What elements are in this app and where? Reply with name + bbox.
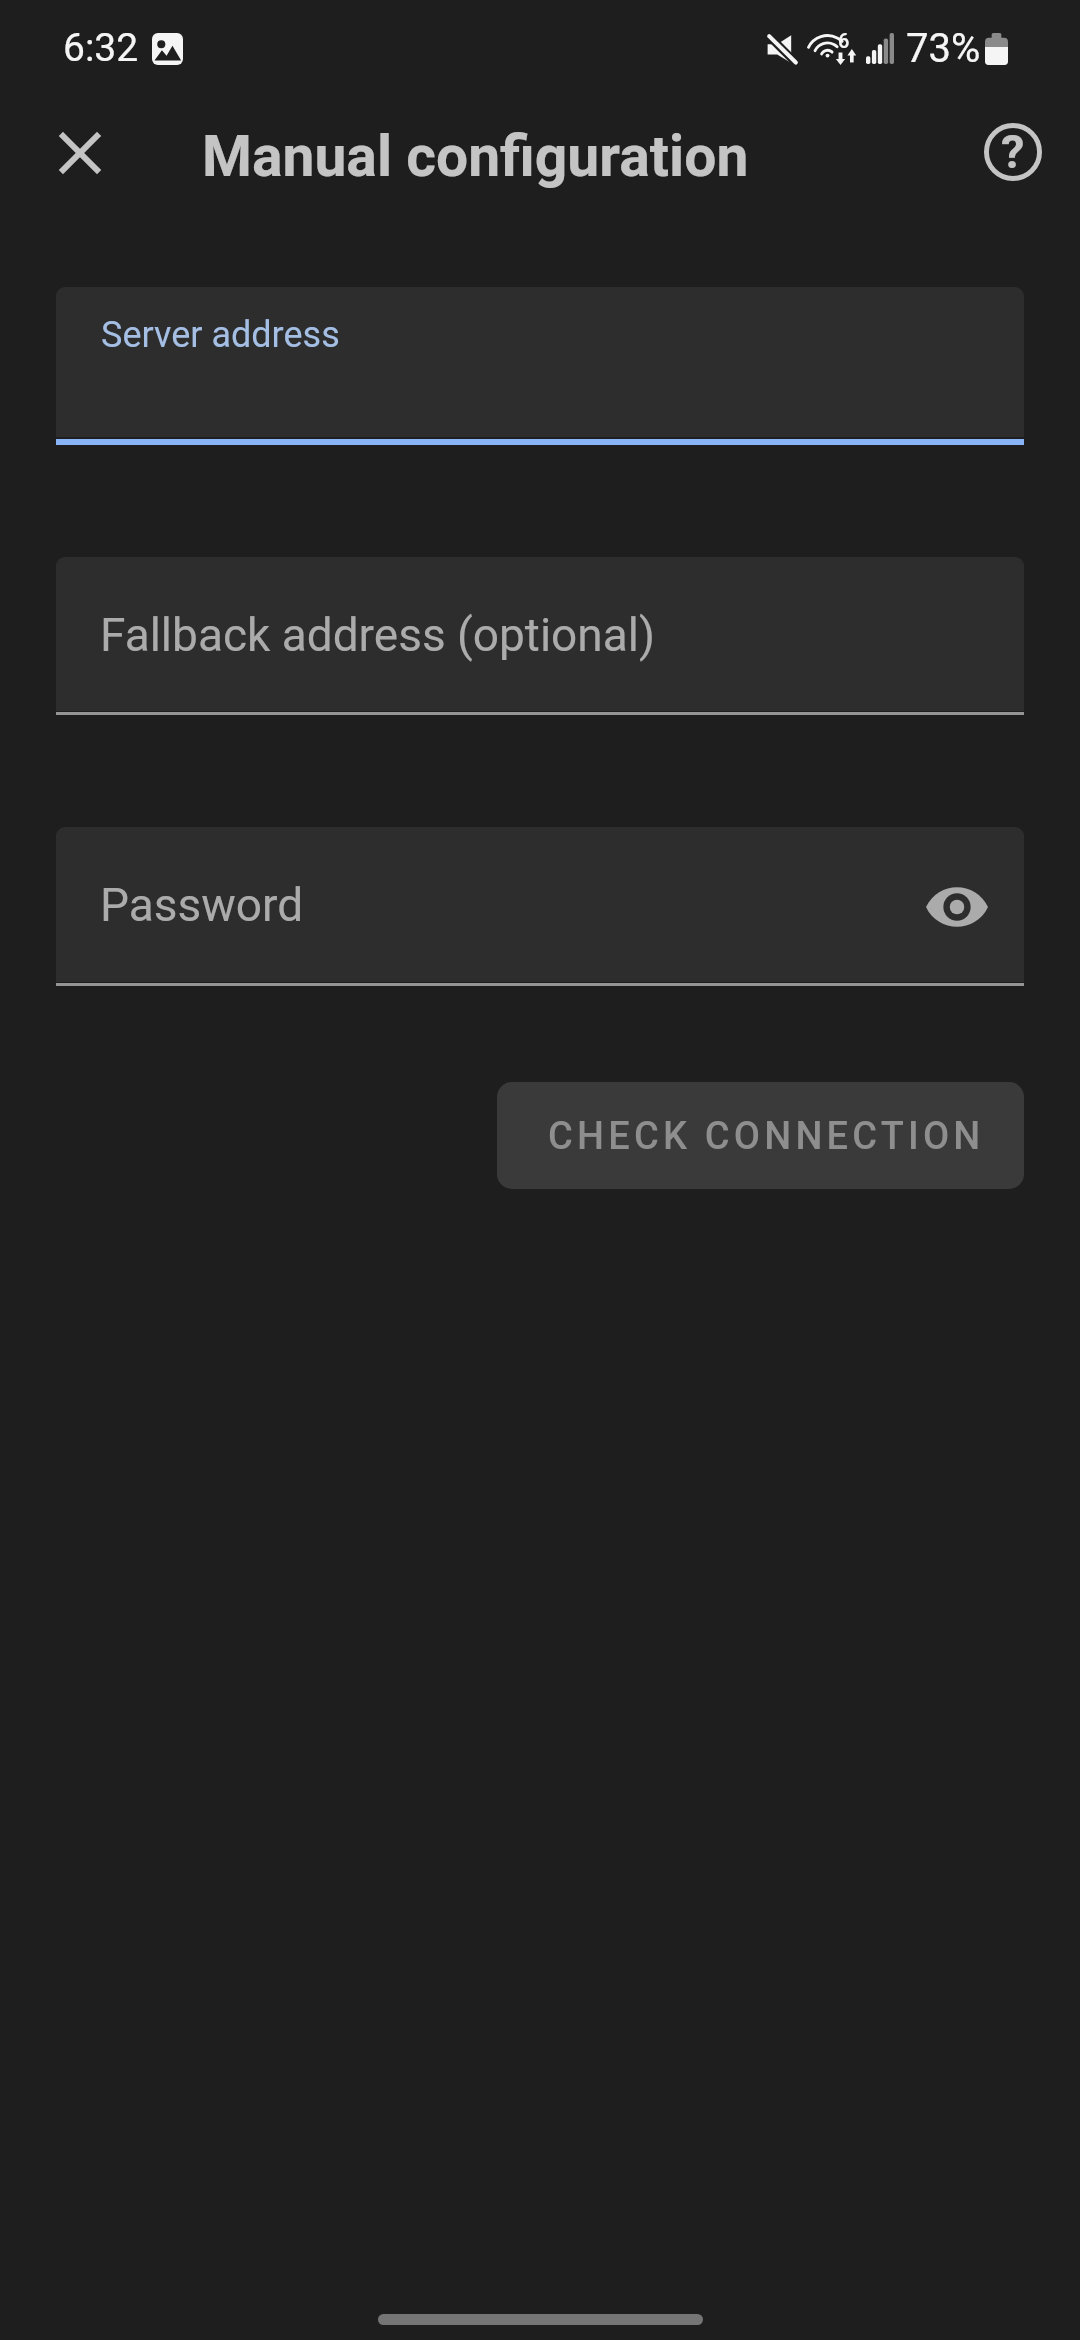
button[interactable]: Close xyxy=(25,98,135,208)
staticText: 73% xyxy=(906,25,981,72)
button[interactable]: Help xyxy=(958,97,1068,207)
button[interactable]: Server address xyxy=(56,287,1024,437)
button[interactable]: CHECK CONNECTION xyxy=(497,1082,1024,1189)
staticText: CHECK CONNECTION xyxy=(548,1114,985,1159)
staticText: Server address xyxy=(101,314,340,356)
staticText: 6 xyxy=(838,29,850,52)
staticText: Password xyxy=(100,878,304,932)
staticText: 6:32 xyxy=(63,25,139,71)
staticText: Fallback address (optional) xyxy=(100,608,655,662)
button[interactable]: Fallback address (optional) xyxy=(56,557,1024,711)
button[interactable]: Password xyxy=(56,827,1024,982)
staticText: Manual configuration xyxy=(202,123,749,190)
button[interactable]: Show password xyxy=(902,853,1012,960)
staticText: ? xyxy=(1001,124,1025,179)
